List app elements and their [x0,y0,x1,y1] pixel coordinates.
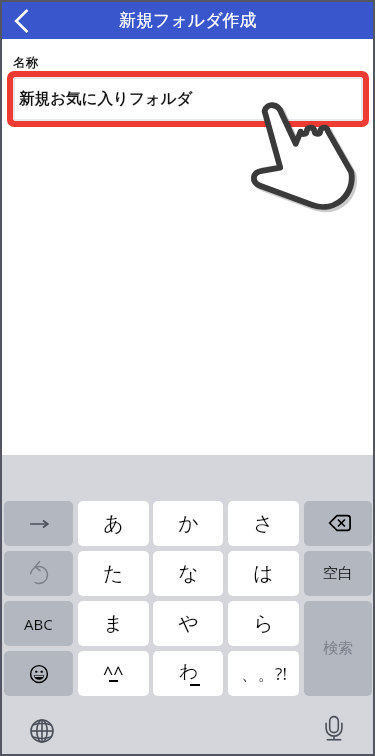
staticText: た [103,561,124,586]
button[interactable]: な [153,551,223,596]
button[interactable]: arrow [4,501,73,546]
button[interactable]: Voice input [320,713,348,741]
staticText: 、。?! [241,662,287,685]
button[interactable]: Back [2,2,42,39]
button[interactable]: search [304,601,372,696]
button[interactable]: 新規お気に入りフォルダ [13,77,363,121]
staticText: ABC [24,614,53,634]
button[interactable]: あ [78,501,149,546]
button[interactable]: undo [4,551,73,596]
staticText: 新規お気に入りフォルダ [19,89,193,109]
staticText: 新規フォルダ作成 [119,10,257,31]
button[interactable]: や [153,601,223,646]
button[interactable]: わ [153,651,223,696]
staticText: ま [103,611,124,636]
button[interactable]: ま [78,601,149,646]
button[interactable]: Change keyboard language [26,715,58,747]
staticText: な [178,561,199,586]
staticText: わ [179,660,199,684]
staticText: は [253,561,274,586]
button[interactable]: ら [228,601,299,646]
button[interactable]: さ [228,501,299,546]
button[interactable]: は [228,551,299,596]
staticText: あ [103,511,124,536]
staticText: 名称 [13,55,38,71]
button[interactable]: か [153,501,223,546]
button[interactable]: ^^ [78,651,149,696]
staticText: や [178,611,199,636]
staticText: ら [253,611,274,636]
button[interactable]: た [78,551,149,596]
staticText: 検索 [323,639,353,658]
staticText: か [178,511,199,536]
button[interactable]: 、。?! [228,651,299,696]
button[interactable]: abc [4,601,73,646]
staticText: さ [253,511,274,536]
staticText: 空白 [323,564,353,583]
button[interactable]: bksp [304,501,372,546]
button[interactable]: emoji [4,651,73,696]
staticText: ^^ [103,661,124,686]
button[interactable]: space [304,551,372,596]
